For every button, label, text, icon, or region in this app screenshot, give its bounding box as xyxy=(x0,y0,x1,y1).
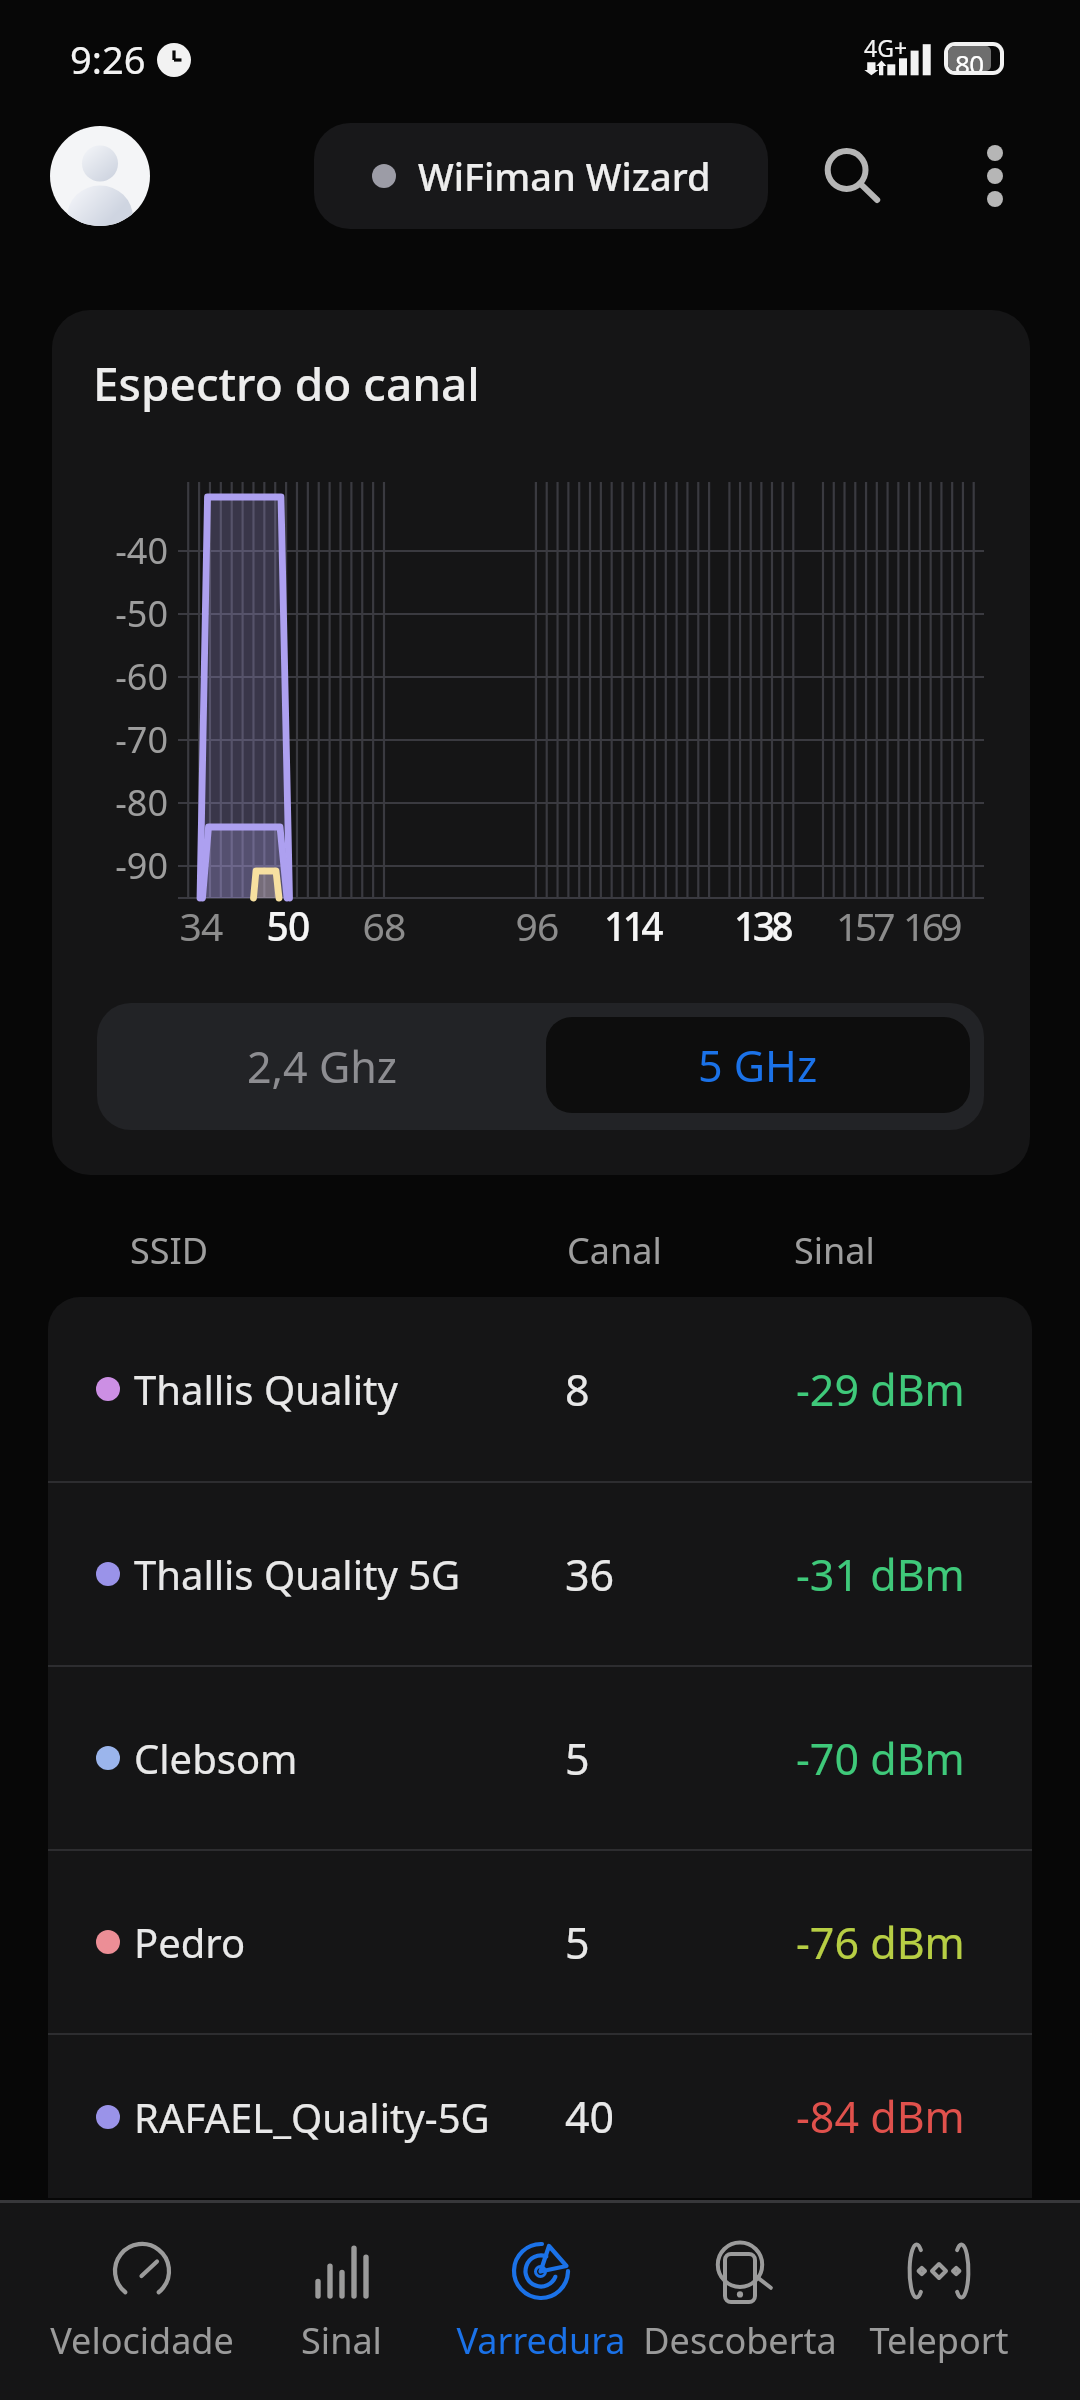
button[interactable]: Clebsom xyxy=(48,1667,1032,1849)
staticText: 68 xyxy=(324,899,444,952)
button[interactable]: RAFAEL_Quality-5G xyxy=(48,2035,1032,2198)
staticText: RAFAEL_Quality-5G xyxy=(134,2090,565,2144)
staticText: Thallis Quality xyxy=(134,1362,565,1416)
staticText: Thallis Quality 5G xyxy=(134,1547,565,1601)
button[interactable]: WiFiman Wizard xyxy=(314,123,768,229)
button[interactable]: Profile xyxy=(50,126,150,226)
staticText: -31 dBm xyxy=(796,1545,965,1604)
button[interactable]: Velocidade xyxy=(42,2203,242,2400)
staticText: -60 xyxy=(80,652,168,701)
staticText: WiFiman Wizard xyxy=(418,150,711,202)
button[interactable]: 5 GHz xyxy=(546,1017,970,1113)
staticText: Clebsom xyxy=(134,1731,565,1785)
staticText: -76 dBm xyxy=(796,1913,965,1972)
staticText: -80 xyxy=(80,778,168,827)
staticText: Canal xyxy=(567,1226,662,1275)
staticText: 2,4 Ghz xyxy=(247,1037,397,1096)
staticText: -29 dBm xyxy=(796,1360,965,1419)
staticText: 50 xyxy=(228,899,348,952)
staticText: 96 xyxy=(477,899,597,952)
button[interactable]: Thallis Quality 5G xyxy=(48,1483,1032,1665)
staticText: Sinal xyxy=(301,2316,382,2365)
staticText: 36 xyxy=(565,1545,796,1604)
staticText: -84 dBm xyxy=(796,2087,965,2146)
button[interactable]: Varredura xyxy=(441,2203,640,2400)
staticText: 4G+ xyxy=(864,32,908,63)
button[interactable]: Search xyxy=(802,126,902,226)
staticText: 169 xyxy=(871,899,991,952)
staticText: Teleport xyxy=(869,2316,1009,2365)
staticText: 114 xyxy=(572,899,692,952)
staticText: 5 GHz xyxy=(698,1036,818,1095)
button[interactable]: 2,4 Ghz xyxy=(97,1003,546,1130)
button[interactable]: More options xyxy=(945,126,1045,226)
staticText: Velocidade xyxy=(50,2316,234,2365)
staticText: Descoberta xyxy=(643,2316,837,2365)
staticText: -50 xyxy=(80,589,168,638)
staticText: 8 xyxy=(565,1360,796,1419)
staticText: 157 xyxy=(804,899,924,952)
staticText: 5 xyxy=(565,1913,796,1972)
staticText: Espectro do canal xyxy=(93,352,480,415)
button[interactable]: Pedro xyxy=(48,1851,1032,2033)
staticText: 34 xyxy=(141,899,261,952)
button[interactable]: Teleport xyxy=(839,2203,1038,2400)
staticText: SSID xyxy=(130,1226,209,1275)
button[interactable]: Thallis Quality xyxy=(48,1297,1032,1481)
staticText: 40 xyxy=(565,2087,796,2146)
staticText: -40 xyxy=(80,526,168,575)
staticText: -70 xyxy=(80,715,168,764)
staticText: 9:26 xyxy=(70,33,146,85)
staticText: Varredura xyxy=(456,2316,626,2365)
staticText: 5 xyxy=(565,1729,796,1788)
button[interactable]: Descoberta xyxy=(640,2203,839,2400)
staticText: Sinal xyxy=(794,1226,875,1275)
staticText: 138 xyxy=(702,899,822,952)
staticText: Pedro xyxy=(134,1915,565,1969)
staticText: -90 xyxy=(80,841,168,890)
button[interactable]: Sinal xyxy=(242,2203,441,2400)
staticText: -70 dBm xyxy=(796,1729,965,1788)
staticText: 80 xyxy=(955,46,984,71)
